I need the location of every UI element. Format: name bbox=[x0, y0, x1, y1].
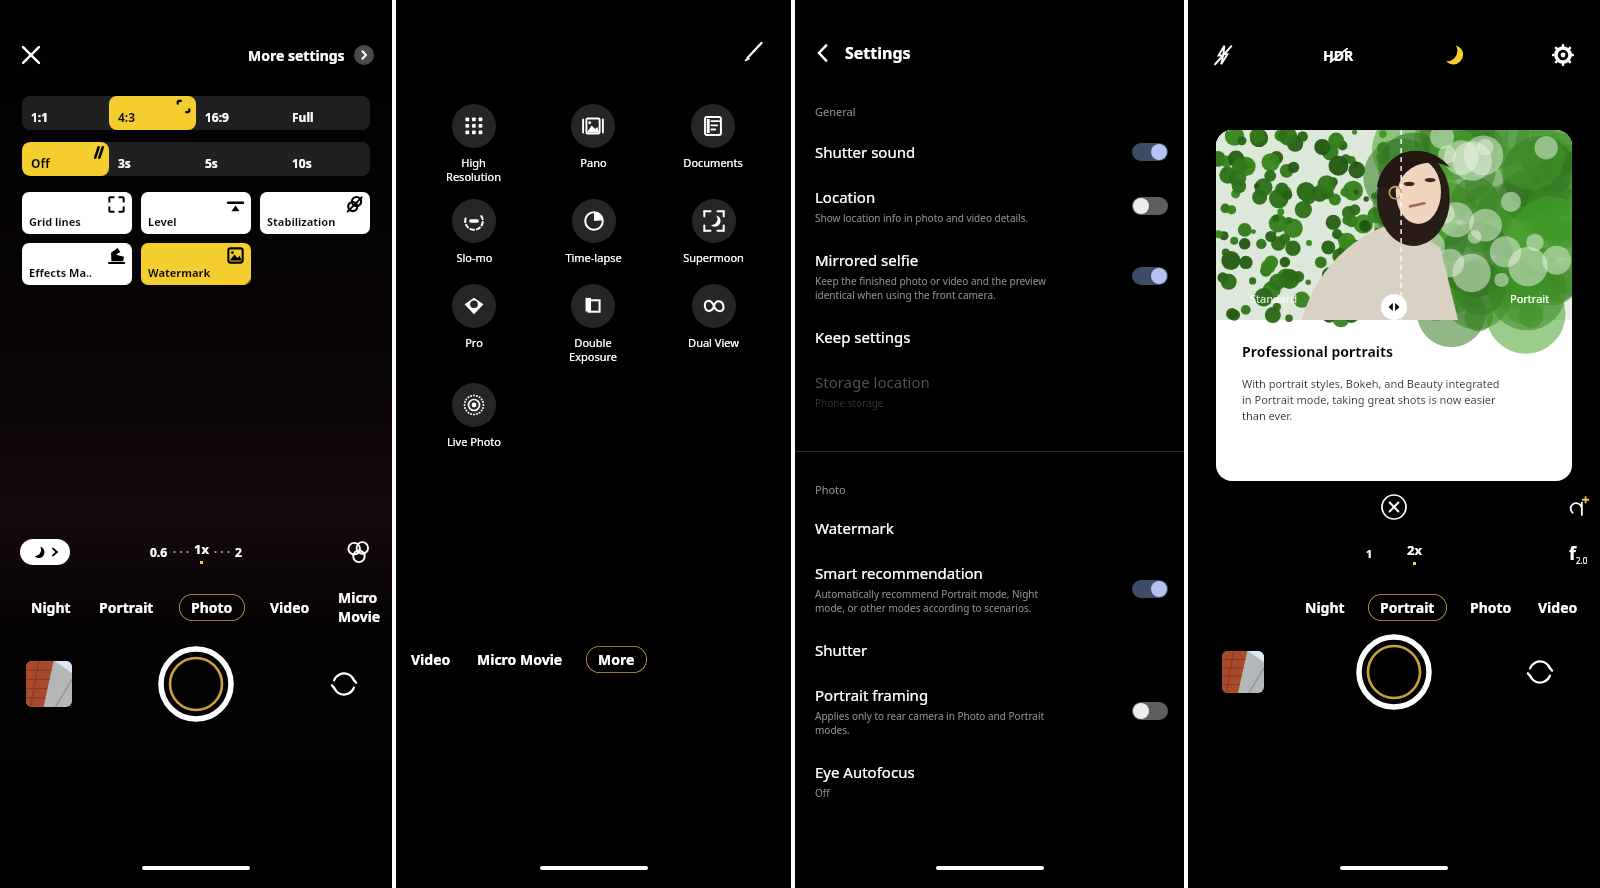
button[interactable]: 10s bbox=[283, 142, 370, 176]
button[interactable]: Gallery bbox=[1222, 651, 1264, 693]
button[interactable]: Pro bbox=[452, 282, 496, 352]
button[interactable]: High Resolution bbox=[446, 102, 501, 186]
button[interactable]: Documents bbox=[683, 102, 743, 172]
button[interactable]: Mirrored selfie bbox=[795, 250, 1184, 327]
staticText: Video bbox=[1538, 598, 1578, 617]
button[interactable]: Full bbox=[283, 96, 370, 130]
button[interactable]: On bbox=[1132, 267, 1168, 285]
staticText: Dual View bbox=[688, 335, 739, 350]
button[interactable]: Dual View bbox=[688, 282, 739, 352]
staticText: Storage location bbox=[815, 372, 930, 392]
button[interactable]: Back bbox=[813, 43, 833, 63]
button[interactable]: 3s bbox=[109, 142, 196, 176]
button[interactable]: Micro Movie bbox=[335, 583, 392, 631]
button[interactable]: Night bbox=[1302, 593, 1348, 622]
button[interactable]: Micro Movie bbox=[474, 645, 566, 674]
staticText: 2x bbox=[1407, 541, 1422, 559]
button[interactable]: Compare slider bbox=[1381, 294, 1407, 320]
button[interactable]: Night mode bbox=[1442, 44, 1464, 66]
staticText: Standard bbox=[1250, 291, 1298, 306]
staticText: 1x bbox=[194, 540, 209, 558]
button[interactable]: 4:3 bbox=[109, 96, 196, 130]
button[interactable]: Night bbox=[28, 593, 74, 622]
staticText: 2 bbox=[235, 544, 242, 560]
button[interactable]: Close tutorial bbox=[1381, 494, 1407, 520]
button[interactable]: Storage location bbox=[795, 372, 1184, 435]
button[interactable]: Off bbox=[1132, 197, 1168, 215]
button[interactable]: Switch camera bbox=[328, 668, 360, 700]
button[interactable]: Time-lapse bbox=[565, 197, 622, 267]
button[interactable]: Shutter bbox=[158, 646, 234, 722]
button[interactable]: Portrait bbox=[1368, 594, 1447, 621]
button[interactable]: Eye Autofocus bbox=[795, 762, 1184, 825]
button[interactable]: Night mode bbox=[20, 539, 70, 565]
staticText: Double Exposure bbox=[569, 335, 617, 364]
staticText: Full bbox=[292, 109, 314, 125]
button[interactable]: HDR off bbox=[1323, 46, 1354, 65]
staticText: With portrait styles, Bokeh, and Beauty … bbox=[1242, 376, 1500, 423]
button[interactable]: Shutter sound bbox=[795, 142, 1184, 187]
button[interactable]: Video bbox=[1535, 593, 1581, 622]
button[interactable]: 5s bbox=[196, 142, 283, 176]
button[interactable]: Pano bbox=[571, 102, 615, 172]
button[interactable]: Smart recommendation bbox=[795, 563, 1184, 640]
button[interactable]: More bbox=[586, 646, 647, 673]
staticText: Photo bbox=[815, 482, 846, 497]
button[interactable]: Supermoon bbox=[683, 197, 744, 267]
button[interactable]: Photo bbox=[179, 594, 245, 621]
button[interactable]: 16:9 bbox=[196, 96, 283, 130]
button[interactable]: 1:1 bbox=[22, 96, 109, 130]
button[interactable]: Portrait bbox=[96, 593, 157, 622]
button[interactable]: Effects Ma.. bbox=[22, 243, 132, 285]
button[interactable]: Double Exposure bbox=[569, 282, 617, 366]
staticText: Watermark bbox=[815, 518, 894, 538]
button[interactable]: Location bbox=[795, 187, 1184, 250]
button[interactable]: Switch camera bbox=[1524, 656, 1556, 688]
staticText: Location bbox=[815, 187, 876, 207]
staticText: 5s bbox=[205, 155, 218, 171]
button[interactable]: Video bbox=[408, 645, 454, 674]
button[interactable]: Off bbox=[22, 142, 109, 176]
button[interactable]: Watermark bbox=[141, 243, 251, 285]
staticText: Smart recommendation bbox=[815, 563, 983, 583]
button[interactable]: Slo-mo bbox=[452, 197, 496, 267]
button[interactable]: Flash off bbox=[1212, 44, 1234, 66]
button[interactable]: Portrait framing bbox=[795, 685, 1184, 762]
staticText: High Resolution bbox=[446, 155, 501, 184]
button[interactable]: Off bbox=[1132, 702, 1168, 720]
staticText: Keep settings bbox=[815, 327, 911, 347]
button[interactable]: Live Photo bbox=[447, 381, 501, 451]
button[interactable]: Shutter bbox=[1356, 634, 1432, 710]
button[interactable]: Video bbox=[267, 593, 313, 622]
button[interactable]: Settings bbox=[1552, 44, 1574, 66]
button[interactable]: More settings bbox=[248, 45, 374, 65]
button[interactable]: Gallery bbox=[26, 661, 72, 707]
button[interactable]: Edit modes bbox=[743, 40, 765, 62]
button[interactable]: Watermark bbox=[795, 518, 1184, 563]
button[interactable]: Aperture bbox=[1569, 541, 1588, 566]
staticText: Shutter bbox=[815, 640, 868, 660]
staticText: Portrait bbox=[1380, 598, 1435, 617]
button[interactable]: Filters bbox=[346, 540, 370, 564]
staticText: Effects Ma.. bbox=[29, 265, 93, 280]
button[interactable]: Close bbox=[20, 44, 42, 66]
staticText: f bbox=[1569, 541, 1576, 566]
button[interactable]: Grid lines bbox=[22, 192, 132, 234]
button[interactable]: Keep settings bbox=[795, 327, 1184, 372]
staticText: Night bbox=[1305, 598, 1345, 617]
button[interactable]: Photo bbox=[1467, 593, 1515, 622]
staticText: Applies only to rear camera in Photo and… bbox=[815, 709, 1045, 737]
button[interactable]: Level bbox=[141, 192, 251, 234]
staticText: Level bbox=[148, 214, 177, 229]
button[interactable]: On bbox=[1132, 580, 1168, 598]
staticText: More settings bbox=[248, 46, 345, 65]
staticText: Night bbox=[31, 598, 71, 617]
button[interactable]: Stabilization bbox=[260, 192, 370, 234]
staticText: Settings bbox=[845, 42, 911, 64]
staticText: Micro Movie bbox=[477, 650, 563, 669]
button[interactable]: On bbox=[1132, 143, 1168, 161]
staticText: Show location info in photo and video de… bbox=[815, 211, 1029, 225]
button[interactable]: Shutter bbox=[795, 640, 1184, 685]
staticText: Pro bbox=[465, 335, 483, 350]
button[interactable]: Beauty bbox=[1568, 496, 1590, 518]
